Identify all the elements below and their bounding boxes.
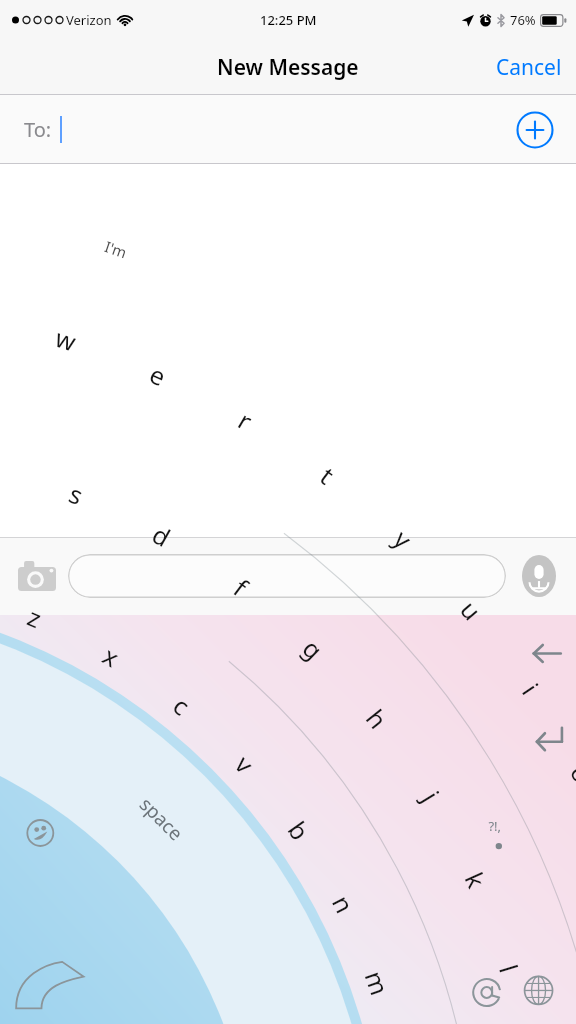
staticText: 76% — [510, 11, 536, 29]
button[interactable]: Add contact — [516, 111, 554, 149]
staticText: Cancel — [496, 53, 562, 82]
button[interactable] — [68, 554, 506, 598]
button[interactable]: Cancel — [482, 41, 576, 94]
button[interactable]: Camera — [14, 553, 60, 599]
button[interactable]: To: — [0, 95, 576, 164]
button[interactable]: Keyboard — [0, 615, 576, 1024]
staticText: 12:25 PM — [260, 11, 317, 29]
staticText: To: — [24, 116, 52, 143]
staticText: New Message — [217, 53, 359, 82]
staticText: Verizon — [66, 11, 112, 29]
button[interactable]: Dictation — [516, 553, 562, 599]
